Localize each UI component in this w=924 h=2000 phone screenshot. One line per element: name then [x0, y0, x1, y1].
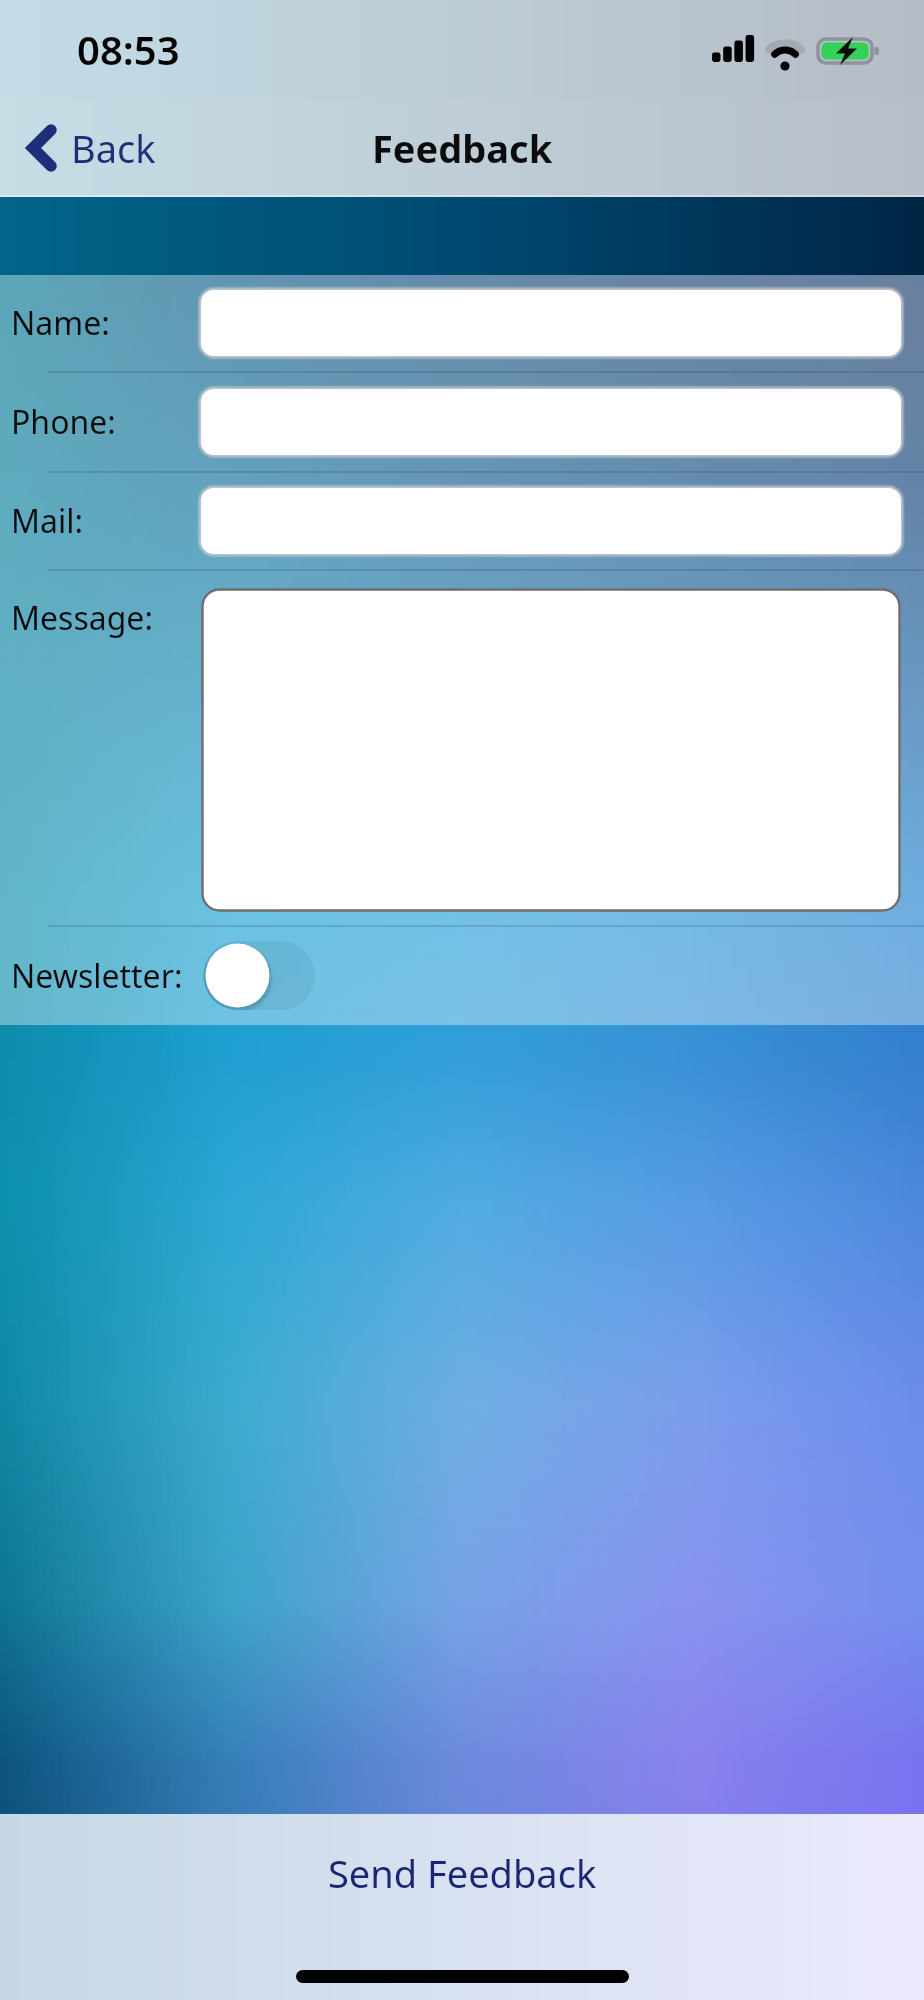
button[interactable]: Name text field — [197, 286, 905, 360]
staticText: Feedback — [372, 122, 553, 174]
staticText: Mail: — [11, 499, 84, 543]
button[interactable]: Newsletter toggle — [203, 941, 315, 1010]
button[interactable]: Mail text field — [197, 484, 905, 558]
staticText: Back — [71, 122, 156, 174]
button[interactable]: Send Feedback — [0, 1814, 924, 1932]
button[interactable]: Message text field — [201, 588, 901, 912]
staticText: Name: — [11, 301, 110, 345]
staticText: Phone: — [11, 400, 116, 444]
staticText: Message: — [11, 596, 153, 640]
button[interactable]: Phone text field — [197, 385, 905, 459]
button[interactable]: Back — [0, 99, 180, 197]
staticText: Send Feedback — [328, 1847, 597, 1899]
staticText: 08:53 — [77, 22, 180, 76]
staticText: Newsletter: — [11, 954, 183, 998]
